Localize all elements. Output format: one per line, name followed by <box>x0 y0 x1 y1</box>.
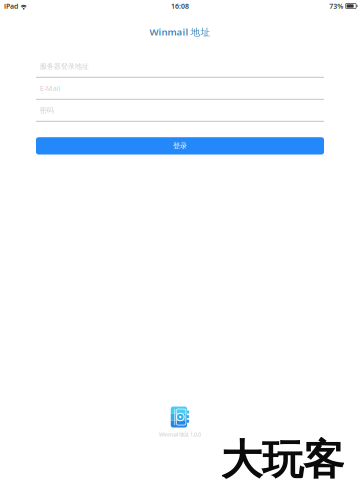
staticText: 密码 <box>40 106 54 115</box>
staticText: 16:08 <box>171 1 189 11</box>
staticText: 73% <box>329 1 343 11</box>
staticText: E-Mail <box>40 83 61 93</box>
button[interactable]: 登录 <box>36 137 324 154</box>
staticText: iPad <box>4 1 18 11</box>
staticText: Winmail 地址 <box>149 25 210 38</box>
staticText: Winmail 地址 1.0.0 <box>159 430 201 438</box>
staticText: 登录 <box>173 141 187 150</box>
staticText: 大玩客 <box>221 434 344 486</box>
staticText: 服务器登录地址 <box>40 62 89 71</box>
